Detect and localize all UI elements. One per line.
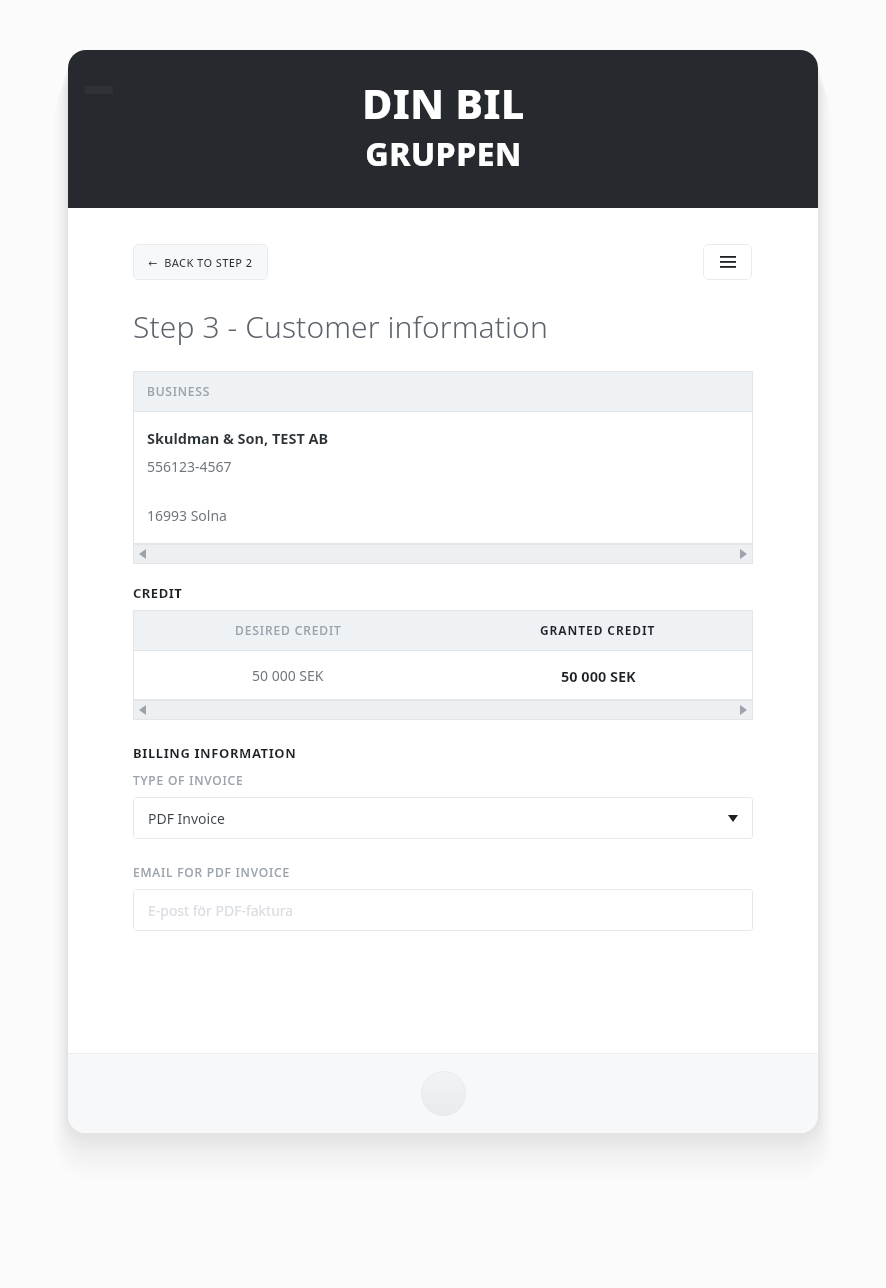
button[interactable]: PDF Invoice xyxy=(133,797,753,839)
button[interactable]: Menu xyxy=(703,244,752,280)
staticText: CREDIT xyxy=(133,584,183,602)
staticText: TYPE OF INVOICE xyxy=(133,772,244,788)
staticText: GRANTED CREDIT xyxy=(540,622,656,638)
staticText: E-post för PDF-faktura xyxy=(148,901,294,920)
staticText: Step 3 - Customer information xyxy=(133,306,548,347)
staticText: Skuldman & Son, TEST AB xyxy=(147,428,329,448)
staticText: 50 000 SEK xyxy=(561,666,636,686)
staticText: 50 000 SEK xyxy=(252,666,324,685)
staticText: DESIRED CREDIT xyxy=(235,622,342,638)
staticText: PDF Invoice xyxy=(148,809,225,828)
staticText: ← BACK TO STEP 2 xyxy=(148,255,253,270)
button[interactable]: Home xyxy=(421,1071,466,1116)
staticText: DIN BIL xyxy=(362,75,525,131)
button[interactable]: E-post för PDF-faktura xyxy=(133,889,753,931)
staticText: BUSINESS xyxy=(147,383,211,399)
staticText: EMAIL FOR PDF INVOICE xyxy=(133,864,290,880)
staticText: 556123-4567 xyxy=(147,457,232,476)
staticText: GRUPPEN xyxy=(365,132,522,176)
button[interactable]: ← BACK TO STEP 2 xyxy=(133,244,268,280)
staticText: BILLING INFORMATION xyxy=(133,744,297,762)
staticText: 16993 Solna xyxy=(147,506,227,525)
